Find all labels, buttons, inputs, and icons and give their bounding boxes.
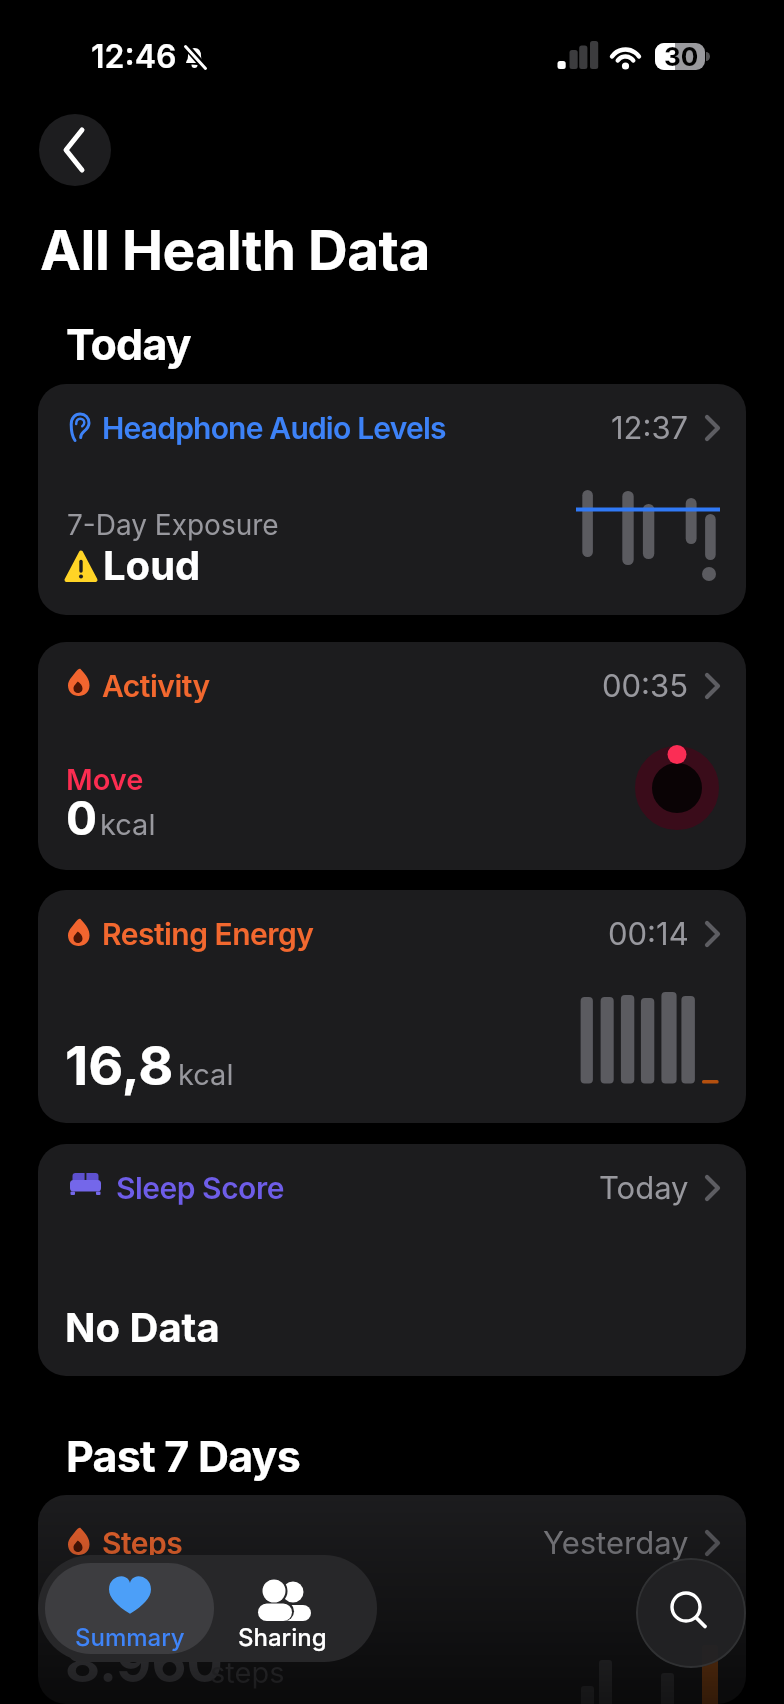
staticText: All Health Data xyxy=(40,217,430,284)
staticText: 00:14 xyxy=(608,915,689,953)
button[interactable]: Activity xyxy=(38,642,746,870)
staticText: 30 xyxy=(664,41,699,72)
button[interactable]: Sleep Score xyxy=(38,1144,746,1376)
button[interactable]: Steps xyxy=(38,1495,746,1704)
staticText: kcal xyxy=(178,1057,234,1092)
button[interactable] xyxy=(39,114,111,186)
staticText: Activity xyxy=(102,668,210,704)
staticText: 00:35 xyxy=(602,667,689,705)
staticText: Today xyxy=(66,318,191,370)
staticText: Steps xyxy=(102,1525,183,1561)
staticText: Move xyxy=(66,762,144,797)
staticText: Headphone Audio Levels xyxy=(102,410,446,446)
staticText: Resting Energy xyxy=(102,916,314,952)
button[interactable]: Resting Energy xyxy=(38,890,746,1123)
staticText: kcal xyxy=(100,807,156,842)
staticText: Loud xyxy=(103,541,201,589)
button[interactable]: Headphone Audio Levels xyxy=(38,384,746,615)
staticText: 0 xyxy=(66,790,98,846)
staticText: 12:37 xyxy=(611,409,689,447)
staticText: 16,8 xyxy=(65,1033,174,1098)
staticText: steps xyxy=(210,1655,285,1690)
staticText: No Data xyxy=(65,1303,220,1351)
staticText: 7-Day Exposure xyxy=(67,508,279,542)
staticText: Sleep Score xyxy=(116,1170,284,1206)
staticText: Today xyxy=(599,1169,689,1207)
button[interactable]: Sharing xyxy=(201,1563,364,1654)
staticText: Sharing xyxy=(238,1623,327,1652)
staticText: Summary xyxy=(75,1623,185,1652)
button[interactable]: Summary xyxy=(45,1563,214,1654)
button[interactable] xyxy=(636,1558,746,1668)
staticText: Past 7 Days xyxy=(66,1430,300,1482)
staticText: 12:46 xyxy=(91,37,177,76)
staticText: Yesterday xyxy=(543,1524,689,1562)
staticText: 8.960 xyxy=(65,1630,223,1695)
